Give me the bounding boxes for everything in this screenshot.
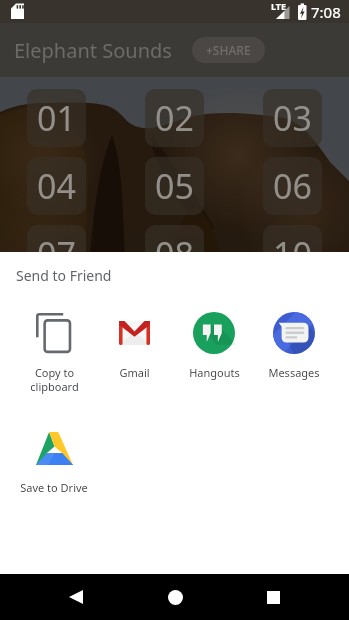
staticText: Hangouts (189, 365, 240, 380)
button[interactable]: 10 (263, 225, 322, 283)
staticText: Copy to clipboard (30, 365, 79, 394)
button[interactable]: Back (53, 574, 99, 620)
staticText: 06 (273, 163, 312, 209)
button[interactable]: 08 (145, 225, 204, 283)
button[interactable]: Copy to clipboard (14, 310, 94, 394)
staticText: 05 (155, 163, 194, 209)
staticText: LTE (271, 0, 287, 12)
button[interactable]: Home (152, 574, 198, 620)
staticText: +SHARE (206, 42, 251, 58)
button[interactable]: 07 (27, 225, 86, 283)
staticText: 03 (273, 95, 312, 141)
staticText: 7:08 (311, 2, 341, 22)
button[interactable]: Messages (254, 310, 334, 380)
staticText: 02 (155, 95, 194, 141)
staticText: 08 (155, 231, 194, 277)
button[interactable]: 01 (27, 89, 86, 147)
button[interactable]: 06 (263, 157, 322, 215)
button[interactable]: 04 (27, 157, 86, 215)
button[interactable]: 03 (263, 89, 322, 147)
button[interactable]: 02 (145, 89, 204, 147)
button[interactable]: Recents (250, 574, 296, 620)
button[interactable]: Hangouts (174, 310, 254, 380)
staticText: Gmail (119, 365, 150, 380)
staticText: 01 (37, 95, 76, 141)
staticText: Save to Drive (20, 480, 88, 495)
staticText: 10 (273, 231, 312, 277)
staticText: 04 (37, 163, 76, 209)
button[interactable]: Save to Drive (14, 425, 94, 495)
staticText: Elephant Sounds (14, 37, 172, 64)
button[interactable]: Gmail (94, 310, 174, 380)
staticText: Messages (268, 365, 320, 380)
button[interactable]: +SHARE (192, 37, 265, 63)
staticText: Send to Friend (16, 266, 112, 285)
button[interactable]: 05 (145, 157, 204, 215)
staticText: 07 (37, 231, 76, 277)
